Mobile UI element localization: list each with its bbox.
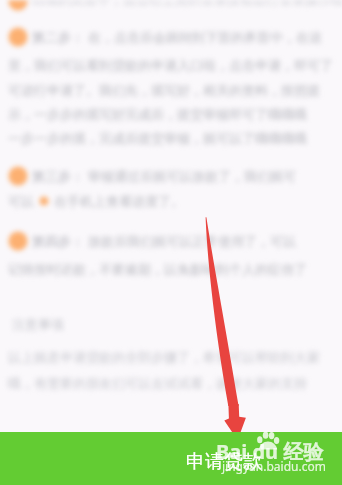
staticText: 里，我们可以看到贷款的申请入口啦，点击申请，即可了 bbox=[8, 57, 333, 73]
staticText: 在手机上查看进度了。 bbox=[54, 193, 184, 209]
staticText: 可以 bbox=[8, 193, 34, 209]
staticText: 放款后我们就可以正常使用了，可以 bbox=[88, 233, 296, 249]
staticText: 审核通过后就可以放款了，我们就可 bbox=[88, 168, 296, 184]
staticText: 以上就是申请贷款的全部步骤了，希望可以帮助到大家 bbox=[8, 349, 320, 365]
staticText: 第三步： bbox=[32, 168, 84, 184]
staticText: 在，点击后会跳转到下面的界面中，在这 bbox=[88, 29, 322, 45]
staticText: 哦，有需要的朋友们可以去试试看，谢谢大家的支持 bbox=[8, 375, 307, 391]
staticText: 第二步： bbox=[32, 29, 84, 45]
staticText: 第四步： bbox=[32, 233, 84, 249]
staticText: 示，一步步的填写好完成后，提交审核即可了哦哦哦 bbox=[8, 106, 307, 122]
staticText: 注意事项 bbox=[12, 316, 64, 332]
staticText: 可进行申请了。我们先，填写好，相关的资料，按照提 bbox=[8, 82, 320, 98]
staticText: 记得按时还款，不要逾期，以免影响到个人的征信了 bbox=[8, 261, 307, 277]
staticText: jingyan.baidu.com bbox=[222, 458, 326, 474]
staticText: Bai du 经验 bbox=[216, 438, 324, 465]
staticText: 申请贷款 bbox=[186, 450, 262, 474]
staticText: 一步一步的填，完成后提交审核，就可以了哦哦哦哦 bbox=[8, 130, 307, 146]
other: Annotation arrow bbox=[0, 0, 342, 485]
button[interactable]: 申请贷款 bbox=[0, 432, 342, 485]
